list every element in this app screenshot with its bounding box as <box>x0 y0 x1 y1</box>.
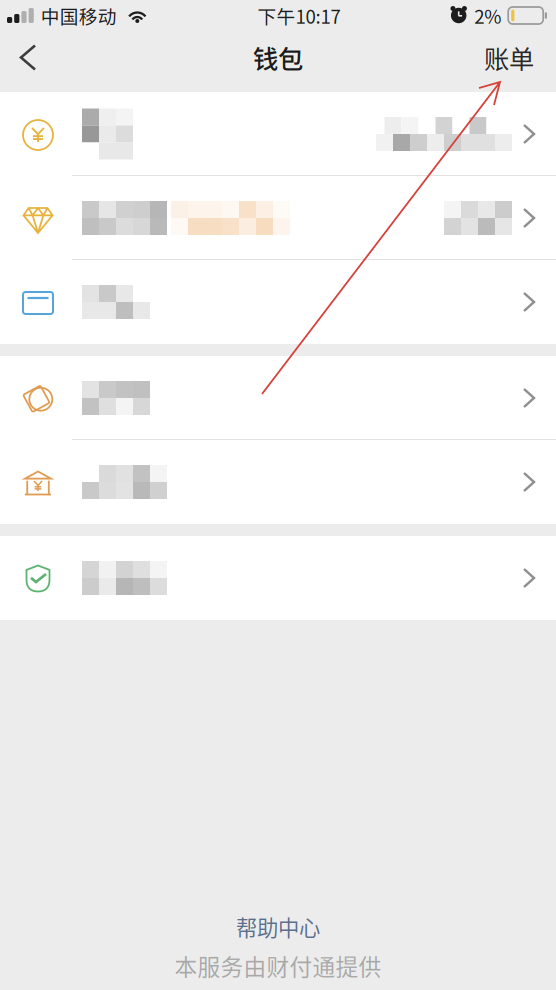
button[interactable]: 帮助中心 <box>236 907 320 946</box>
button[interactable] <box>0 440 556 524</box>
button[interactable] <box>0 260 556 344</box>
staticText: 帮助中心 <box>236 911 320 942</box>
staticText: 账单 <box>484 39 534 76</box>
staticText: 中国移动 <box>41 2 117 29</box>
button[interactable] <box>0 356 556 440</box>
staticText: 下午10:17 <box>257 2 340 29</box>
button[interactable]: 返回 <box>0 34 59 88</box>
button[interactable]: 账单 <box>460 28 556 95</box>
staticText: 2% <box>474 2 501 29</box>
staticText: 钱包 <box>253 39 303 76</box>
staticText: 本服务由财付通提供 <box>174 949 381 982</box>
button[interactable] <box>0 92 556 176</box>
button[interactable] <box>0 536 556 620</box>
button[interactable] <box>0 176 556 260</box>
